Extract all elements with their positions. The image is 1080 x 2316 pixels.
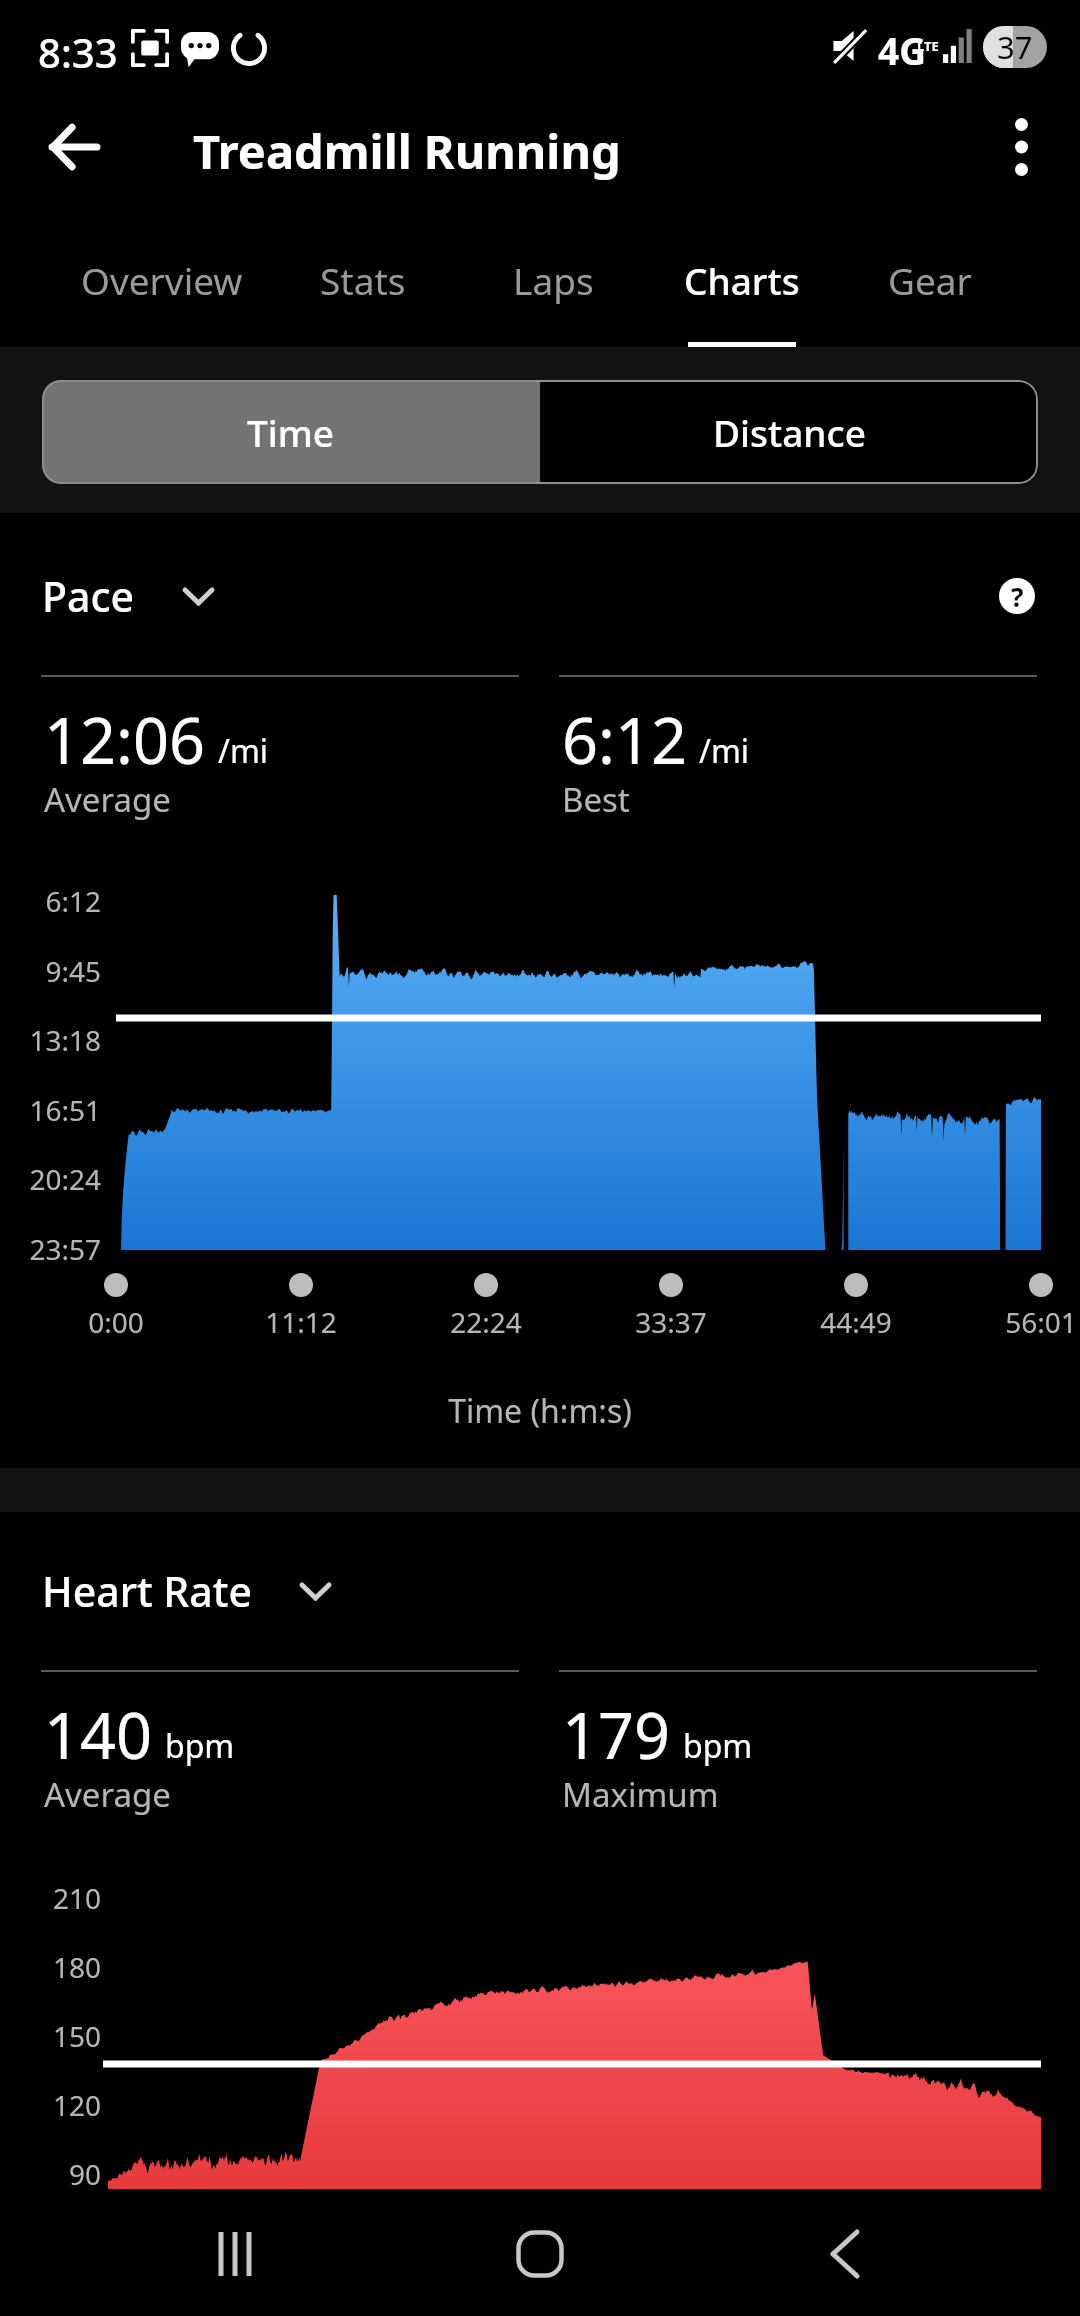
staticText: 8:33: [38, 25, 118, 79]
button[interactable]: Recents: [165, 2192, 305, 2316]
staticText: 44:49: [766, 1303, 946, 1341]
staticText: 11:12: [211, 1303, 391, 1341]
staticText: Laps: [513, 255, 594, 305]
staticText: 179: [562, 1692, 671, 1778]
staticText: 13:18: [0, 1021, 101, 1059]
staticText: Overview: [81, 255, 243, 305]
button[interactable]: Navigate up: [7, 81, 139, 213]
staticText: 210: [0, 1879, 101, 1917]
staticText: Average: [44, 1772, 171, 1817]
staticText: 0:00: [26, 1303, 206, 1341]
staticText: Gear: [888, 255, 972, 305]
staticText: /mi: [699, 729, 750, 773]
staticText: 6:12: [562, 697, 687, 783]
staticText: ?: [1011, 579, 1024, 614]
staticText: Time (h:m:s): [0, 1389, 1080, 1433]
button[interactable]: Stats: [288, 216, 438, 348]
staticText: 20:24: [0, 1160, 101, 1198]
staticText: 37: [997, 26, 1033, 68]
staticText: 90: [0, 2155, 101, 2193]
button[interactable]: Overview: [67, 216, 257, 348]
staticText: Stats: [320, 255, 406, 305]
staticText: 120: [0, 2086, 101, 2124]
button[interactable]: Heart Rate: [42, 1546, 331, 1636]
staticText: 150: [0, 2017, 101, 2055]
button[interactable]: Time: [42, 380, 540, 484]
staticText: 180: [0, 1948, 101, 1986]
staticText: 23:57: [0, 1230, 101, 1268]
staticText: 22:24: [396, 1303, 576, 1341]
staticText: bpm: [683, 1724, 753, 1768]
staticText: 140: [44, 1692, 153, 1778]
staticText: Time: [247, 407, 335, 457]
staticText: LTE: [917, 37, 939, 55]
button[interactable]: Distance: [540, 380, 1038, 484]
staticText: 9:45: [0, 952, 101, 990]
staticText: Charts: [684, 255, 800, 305]
button[interactable]: More options: [955, 81, 1080, 213]
staticText: 56:01: [951, 1303, 1080, 1341]
button[interactable]: Gear: [855, 216, 1005, 348]
staticText: bpm: [165, 1724, 235, 1768]
staticText: 6:12: [0, 882, 101, 920]
staticText: /mi: [218, 729, 269, 773]
button[interactable]: Back: [775, 2192, 915, 2316]
staticText: 4G: [878, 25, 926, 75]
staticText: Pace: [42, 568, 135, 624]
staticText: Heart Rate: [42, 1563, 252, 1619]
staticText: 16:51: [0, 1091, 101, 1129]
staticText: Treadmill Running: [193, 119, 621, 183]
staticText: Distance: [713, 407, 866, 457]
button[interactable]: Charts: [667, 216, 817, 348]
button[interactable]: Pace: [42, 551, 214, 641]
staticText: Average: [44, 777, 171, 822]
button[interactable]: Home: [470, 2192, 610, 2316]
staticText: 33:37: [581, 1303, 761, 1341]
staticText: Maximum: [562, 1772, 719, 1817]
button[interactable]: Help: [983, 562, 1051, 630]
staticText: Best: [562, 777, 630, 822]
staticText: 12:06: [44, 697, 206, 783]
button[interactable]: Laps: [478, 216, 628, 348]
